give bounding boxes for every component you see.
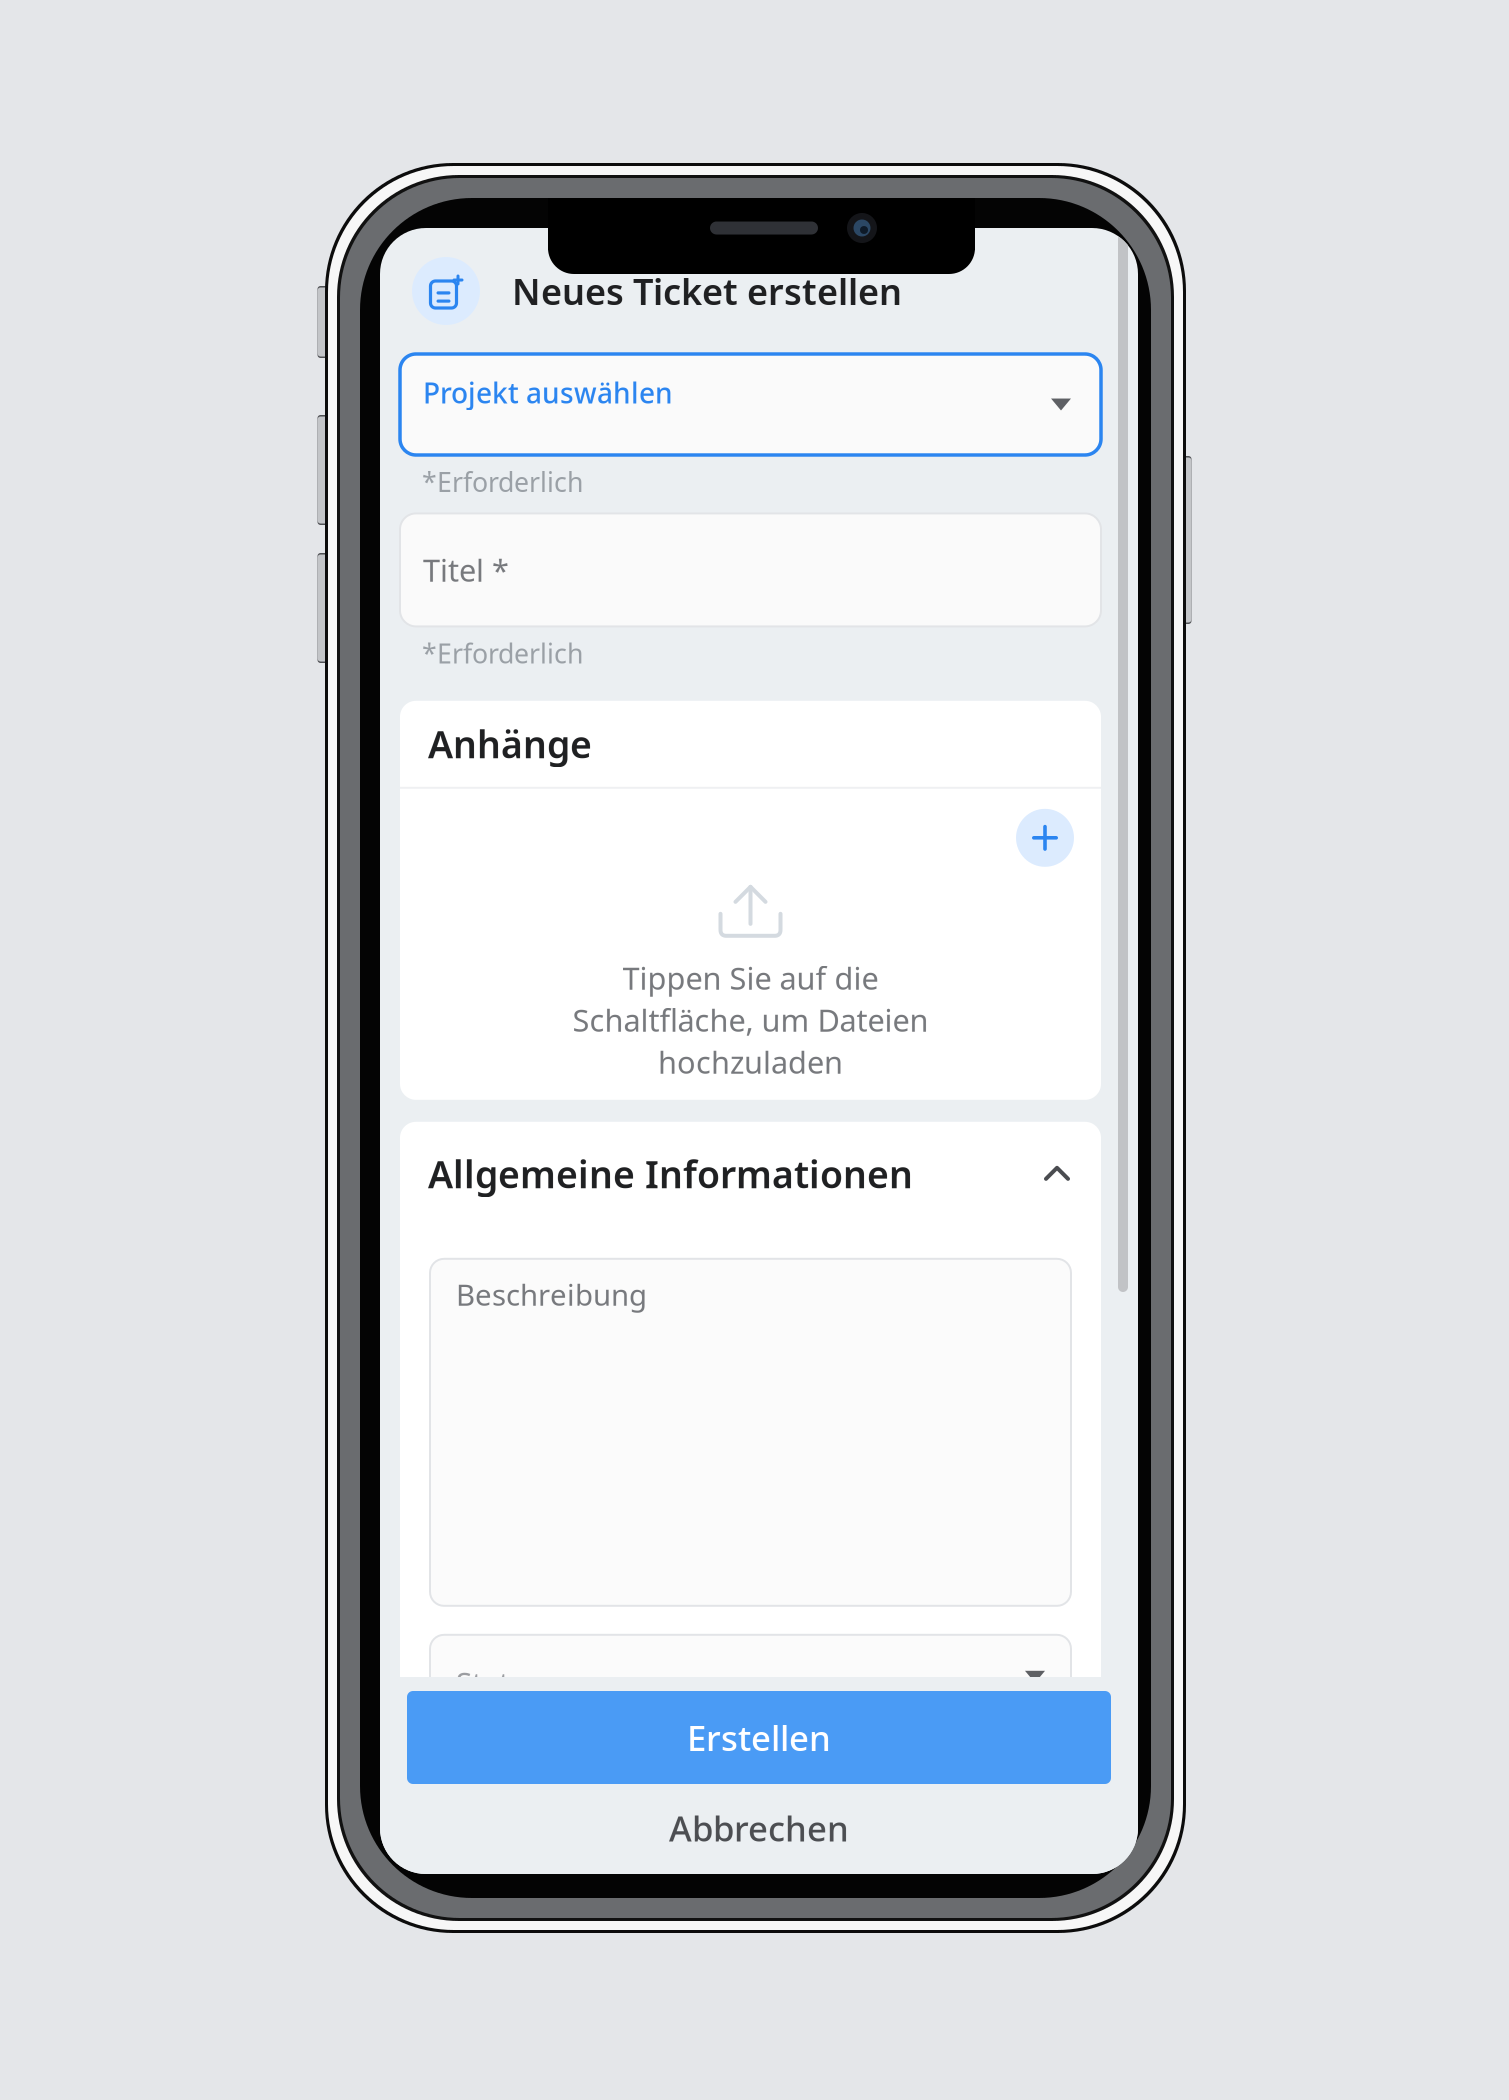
staticText: *Erforderlich	[422, 635, 583, 671]
staticText: Abbrechen	[669, 1805, 849, 1851]
button[interactable]: Datei hinzufügen	[1016, 809, 1074, 867]
staticText: Status	[456, 1663, 542, 1702]
button[interactable]: Titel *	[400, 513, 1101, 626]
staticText: Tippen Sie auf die	[622, 957, 878, 998]
staticText: Anhänge	[428, 719, 592, 769]
staticText: Beschreibung	[456, 1275, 647, 1314]
staticText: Allgemeine Informationen	[428, 1149, 913, 1199]
staticText: Projekt auswählen	[423, 374, 673, 411]
button[interactable]: Projekt auswählen	[400, 354, 1101, 455]
button[interactable]: Neues Ticket	[412, 257, 480, 325]
staticText: Schaltfläche, um Dateien	[572, 999, 928, 1040]
button[interactable]: Abbrechen	[407, 1784, 1111, 1872]
staticText: hochzuladen	[658, 1041, 843, 1082]
button[interactable]: Erstellen	[407, 1691, 1111, 1784]
staticText: Erstellen	[687, 1714, 831, 1760]
staticText: Titel *	[423, 550, 509, 590]
staticText: Neues Ticket erstellen	[512, 267, 902, 315]
staticText: *Erforderlich	[422, 464, 583, 499]
